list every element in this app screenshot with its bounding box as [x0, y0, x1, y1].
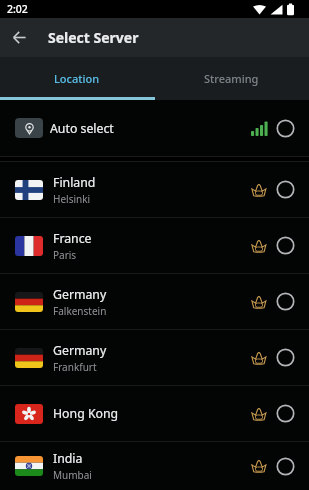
button[interactable]: Location: [0, 57, 154, 100]
button[interactable]: [0, 18, 39, 57]
staticText: Germany: [53, 342, 107, 359]
staticText: Germany: [53, 286, 107, 303]
staticText: Select Server: [48, 28, 139, 47]
staticText: Location: [54, 71, 100, 86]
button[interactable]: Germany: [0, 274, 309, 329]
button[interactable]: France: [0, 218, 309, 273]
staticText: 2:02: [7, 2, 28, 16]
button[interactable]: India: [0, 442, 309, 490]
staticText: France: [53, 230, 92, 247]
button[interactable]: Streaming: [154, 57, 309, 100]
staticText: Helsinki: [53, 192, 91, 206]
button[interactable]: Hong Kong: [0, 386, 309, 441]
button[interactable]: Finland: [0, 162, 309, 217]
staticText: Paris: [53, 248, 77, 262]
staticText: Frankfurt: [53, 360, 97, 374]
staticText: Mumbai: [53, 468, 92, 482]
staticText: Auto select: [50, 120, 114, 137]
button[interactable]: Auto select: [0, 100, 309, 156]
staticText: Falkenstein: [53, 304, 107, 318]
button[interactable]: Germany: [0, 330, 309, 385]
staticText: Streaming: [204, 71, 259, 86]
staticText: Finland: [53, 174, 96, 191]
staticText: India: [53, 450, 83, 467]
staticText: Hong Kong: [53, 405, 119, 422]
